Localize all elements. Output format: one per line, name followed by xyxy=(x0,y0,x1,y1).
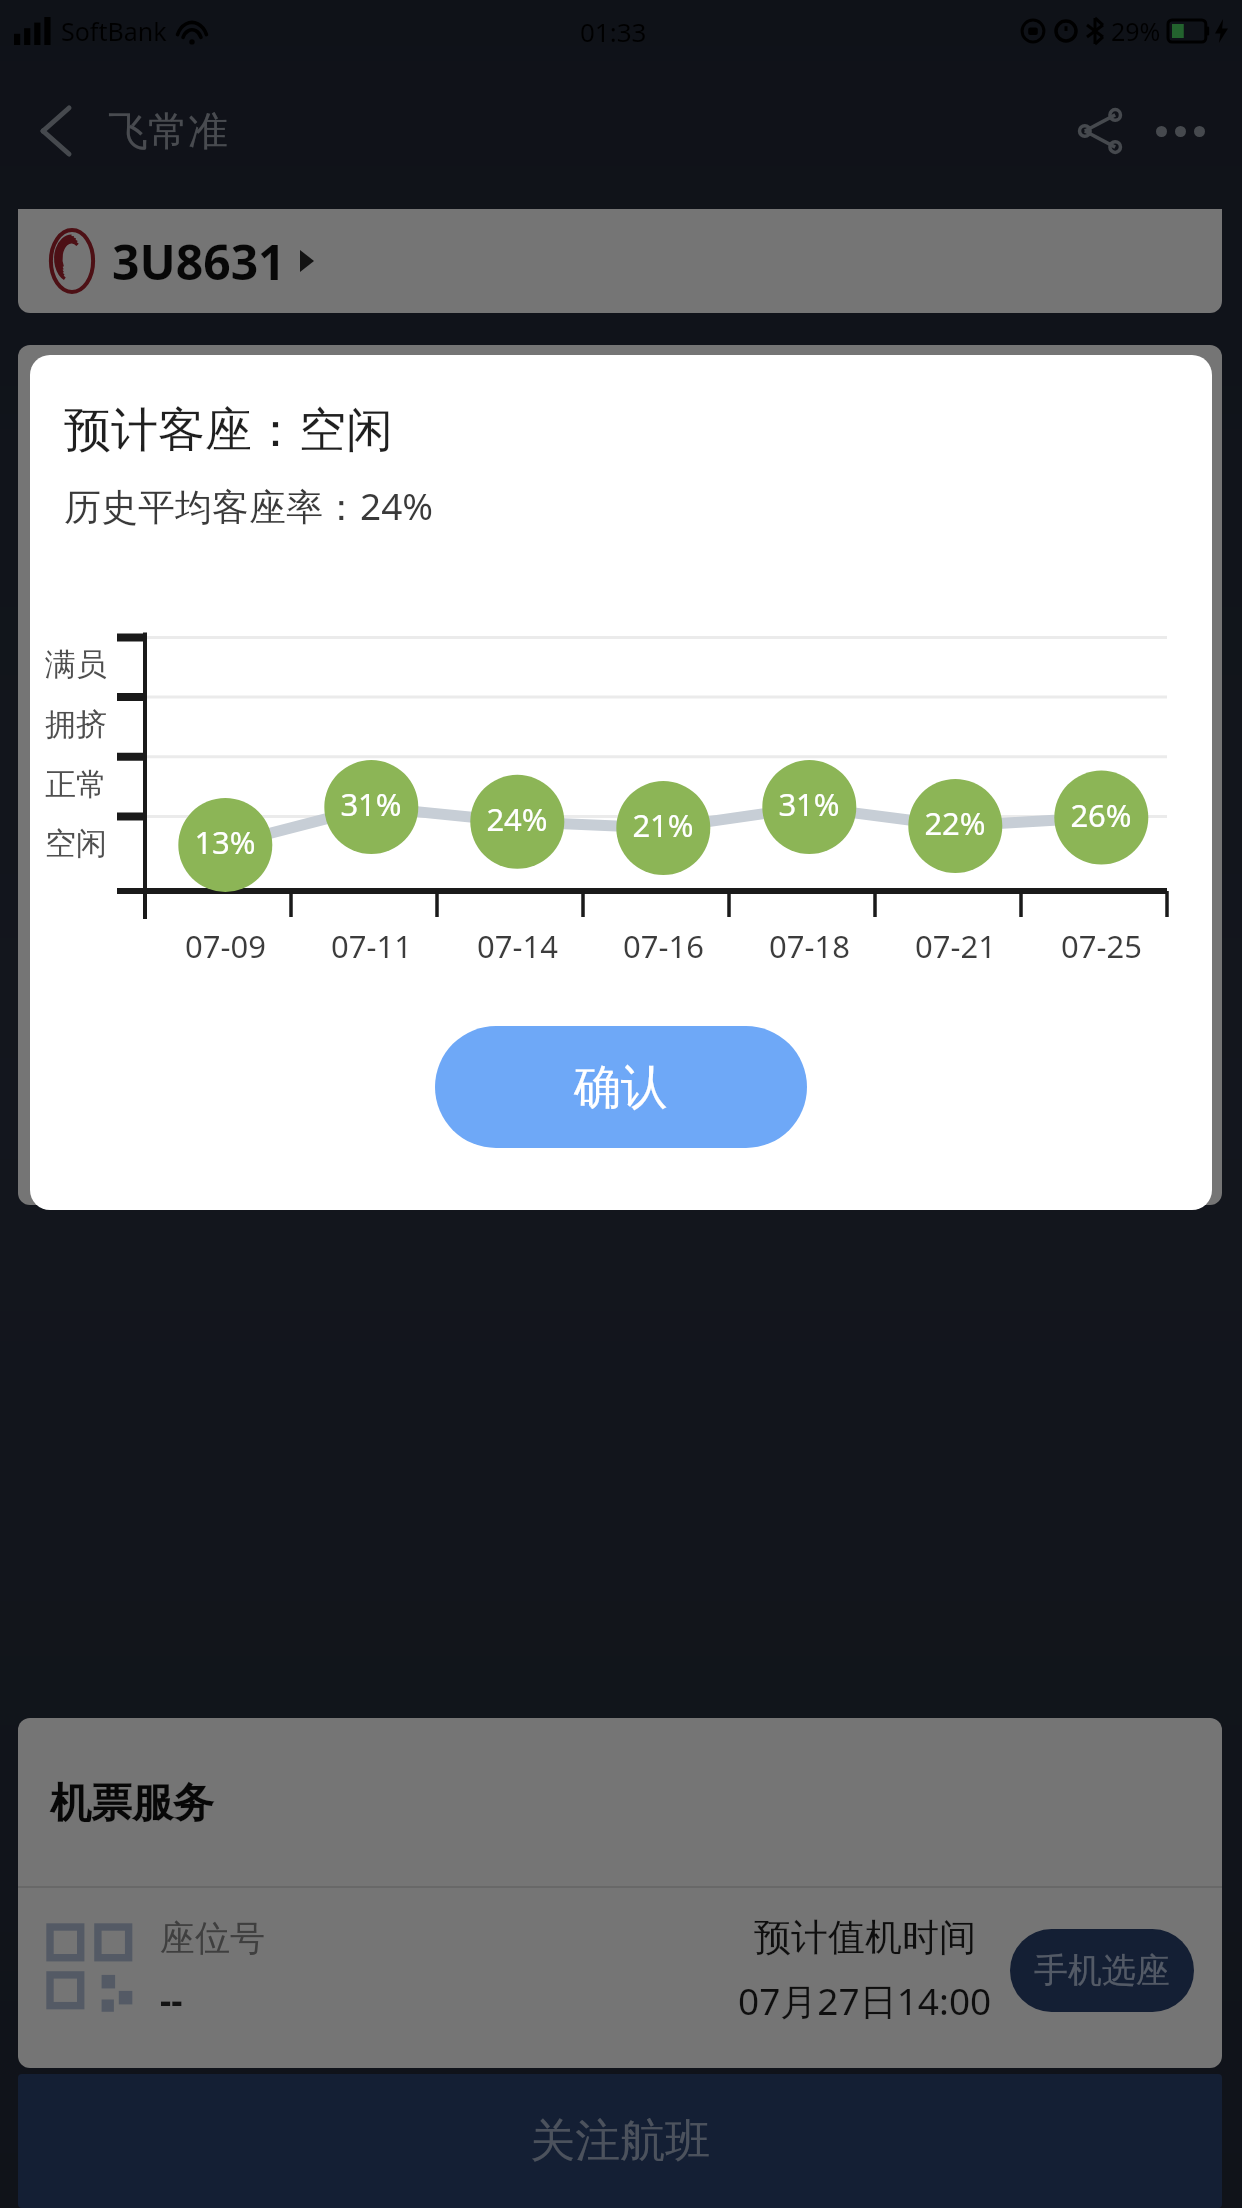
staticText: 13% xyxy=(194,821,256,863)
staticText: 07-21 xyxy=(915,925,996,967)
staticText: 确认 xyxy=(574,1058,668,1117)
staticText: 空闲 xyxy=(45,824,107,863)
staticText: SoftBank xyxy=(61,14,167,48)
staticText: 07-16 xyxy=(623,925,704,967)
button[interactable]: 关注航班 xyxy=(18,2074,1222,2208)
staticText: 22% xyxy=(924,802,986,844)
button[interactable]: 手机选座 xyxy=(1010,1929,1194,2012)
staticText: CTU 成都双流T1 xyxy=(46,389,362,448)
staticText: 01:33 xyxy=(580,14,647,49)
staticText: 07-09 xyxy=(185,925,266,967)
staticText: 29% xyxy=(1111,14,1161,48)
staticText: 飞常准 xyxy=(108,106,228,156)
staticText: 正常 xyxy=(45,765,107,804)
staticText: 31% xyxy=(778,783,840,825)
button[interactable]: 确认 xyxy=(435,1026,807,1148)
staticText: 手机选座 xyxy=(1034,1949,1170,1992)
button[interactable]: Share xyxy=(1062,93,1138,169)
staticText: 26% xyxy=(1070,794,1132,836)
staticText: 拥挤 xyxy=(45,705,107,744)
staticText: 21% xyxy=(632,804,694,846)
button[interactable]: Back xyxy=(20,95,92,167)
staticText: 24% xyxy=(486,798,548,840)
staticText: 座位号 xyxy=(160,1916,265,1960)
button[interactable]: 3U8631 xyxy=(18,209,1222,313)
staticText: 预计客座：空闲 xyxy=(64,401,393,460)
staticText: 07-11 xyxy=(331,925,412,967)
staticText: 满员 xyxy=(45,645,107,684)
button[interactable]: More options xyxy=(1142,93,1218,169)
staticText: 预计值机时间 xyxy=(754,1914,976,1961)
staticText: 31% xyxy=(340,783,402,825)
staticText: -- xyxy=(160,1976,183,2024)
staticText: 07-25 xyxy=(1061,925,1142,967)
staticText: 机票服务 xyxy=(50,1778,214,1830)
staticText: 07-18 xyxy=(769,925,850,967)
staticText: 历史平均客座率：24% xyxy=(64,480,434,531)
staticText: 关注航班 xyxy=(530,2113,710,2170)
staticText: 3U8631 xyxy=(112,229,286,294)
staticText: 07-14 xyxy=(477,925,558,967)
staticText: 07月27日14:00 xyxy=(738,1975,992,2026)
